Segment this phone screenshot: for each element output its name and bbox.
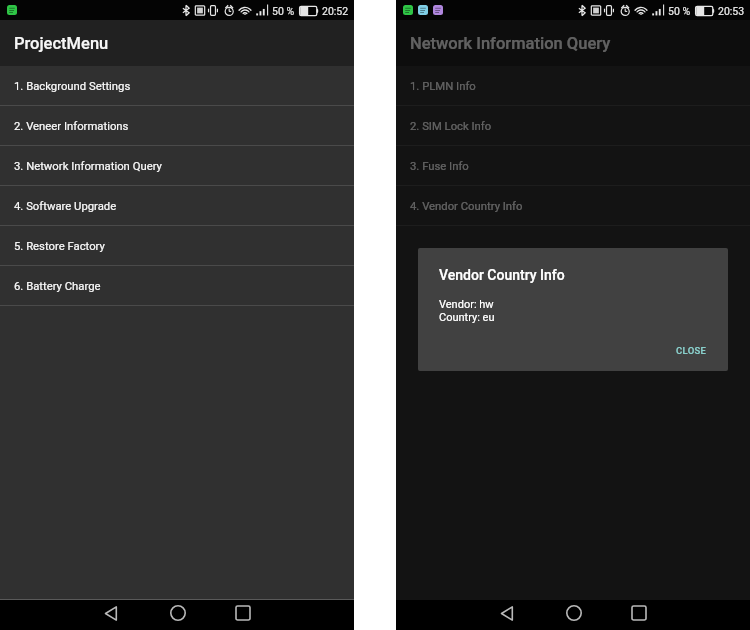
staticText: Vendor Country Info xyxy=(439,267,565,283)
button[interactable]: 2. SIM Lock Info xyxy=(396,106,750,146)
staticText: 50 % xyxy=(668,5,691,17)
staticText: Network Information Query xyxy=(410,34,611,53)
button[interactable]: CLOSE xyxy=(668,341,715,360)
staticText: 2. Veneer Informations xyxy=(14,120,129,133)
staticText: 6. Battery Charge xyxy=(14,280,101,293)
staticText: 2. SIM Lock Info xyxy=(410,120,492,133)
button[interactable]: 3. Network Information Query xyxy=(0,146,354,186)
staticText: 4. Vendor Country Info xyxy=(410,200,523,213)
staticText: Country: eu xyxy=(439,311,495,324)
button[interactable]: Recents xyxy=(622,598,655,628)
staticText: 50 % xyxy=(272,5,295,17)
button[interactable]: 2. Veneer Informations xyxy=(0,106,354,146)
staticText: 20:52 xyxy=(322,5,349,17)
button[interactable]: 5. Restore Factory xyxy=(0,226,354,266)
button[interactable]: Back xyxy=(95,598,128,628)
button[interactable]: 4. Vendor Country Info xyxy=(396,186,750,226)
button[interactable]: 4. Software Upgrade xyxy=(0,186,354,226)
button[interactable]: Home xyxy=(557,598,590,628)
staticText: 1. PLMN Info xyxy=(410,80,476,93)
staticText: 5. Restore Factory xyxy=(14,240,105,253)
button[interactable]: 6. Battery Charge xyxy=(0,266,354,306)
button[interactable]: 1. PLMN Info xyxy=(396,66,750,106)
staticText: ProjectMenu xyxy=(14,34,109,53)
staticText: Vendor: hw xyxy=(439,298,494,311)
button[interactable]: Recents xyxy=(226,598,259,628)
staticText: 3. Network Information Query xyxy=(14,160,162,173)
staticText: 4. Software Upgrade xyxy=(14,200,117,213)
button[interactable]: Back xyxy=(491,598,524,628)
button[interactable]: 1. Background Settings xyxy=(0,66,354,106)
staticText: 3. Fuse Info xyxy=(410,160,469,173)
button[interactable]: Home xyxy=(161,598,194,628)
staticText: 1. Background Settings xyxy=(14,80,131,93)
button[interactable]: 3. Fuse Info xyxy=(396,146,750,186)
staticText: CLOSE xyxy=(676,345,707,356)
staticText: 20:53 xyxy=(718,5,745,17)
